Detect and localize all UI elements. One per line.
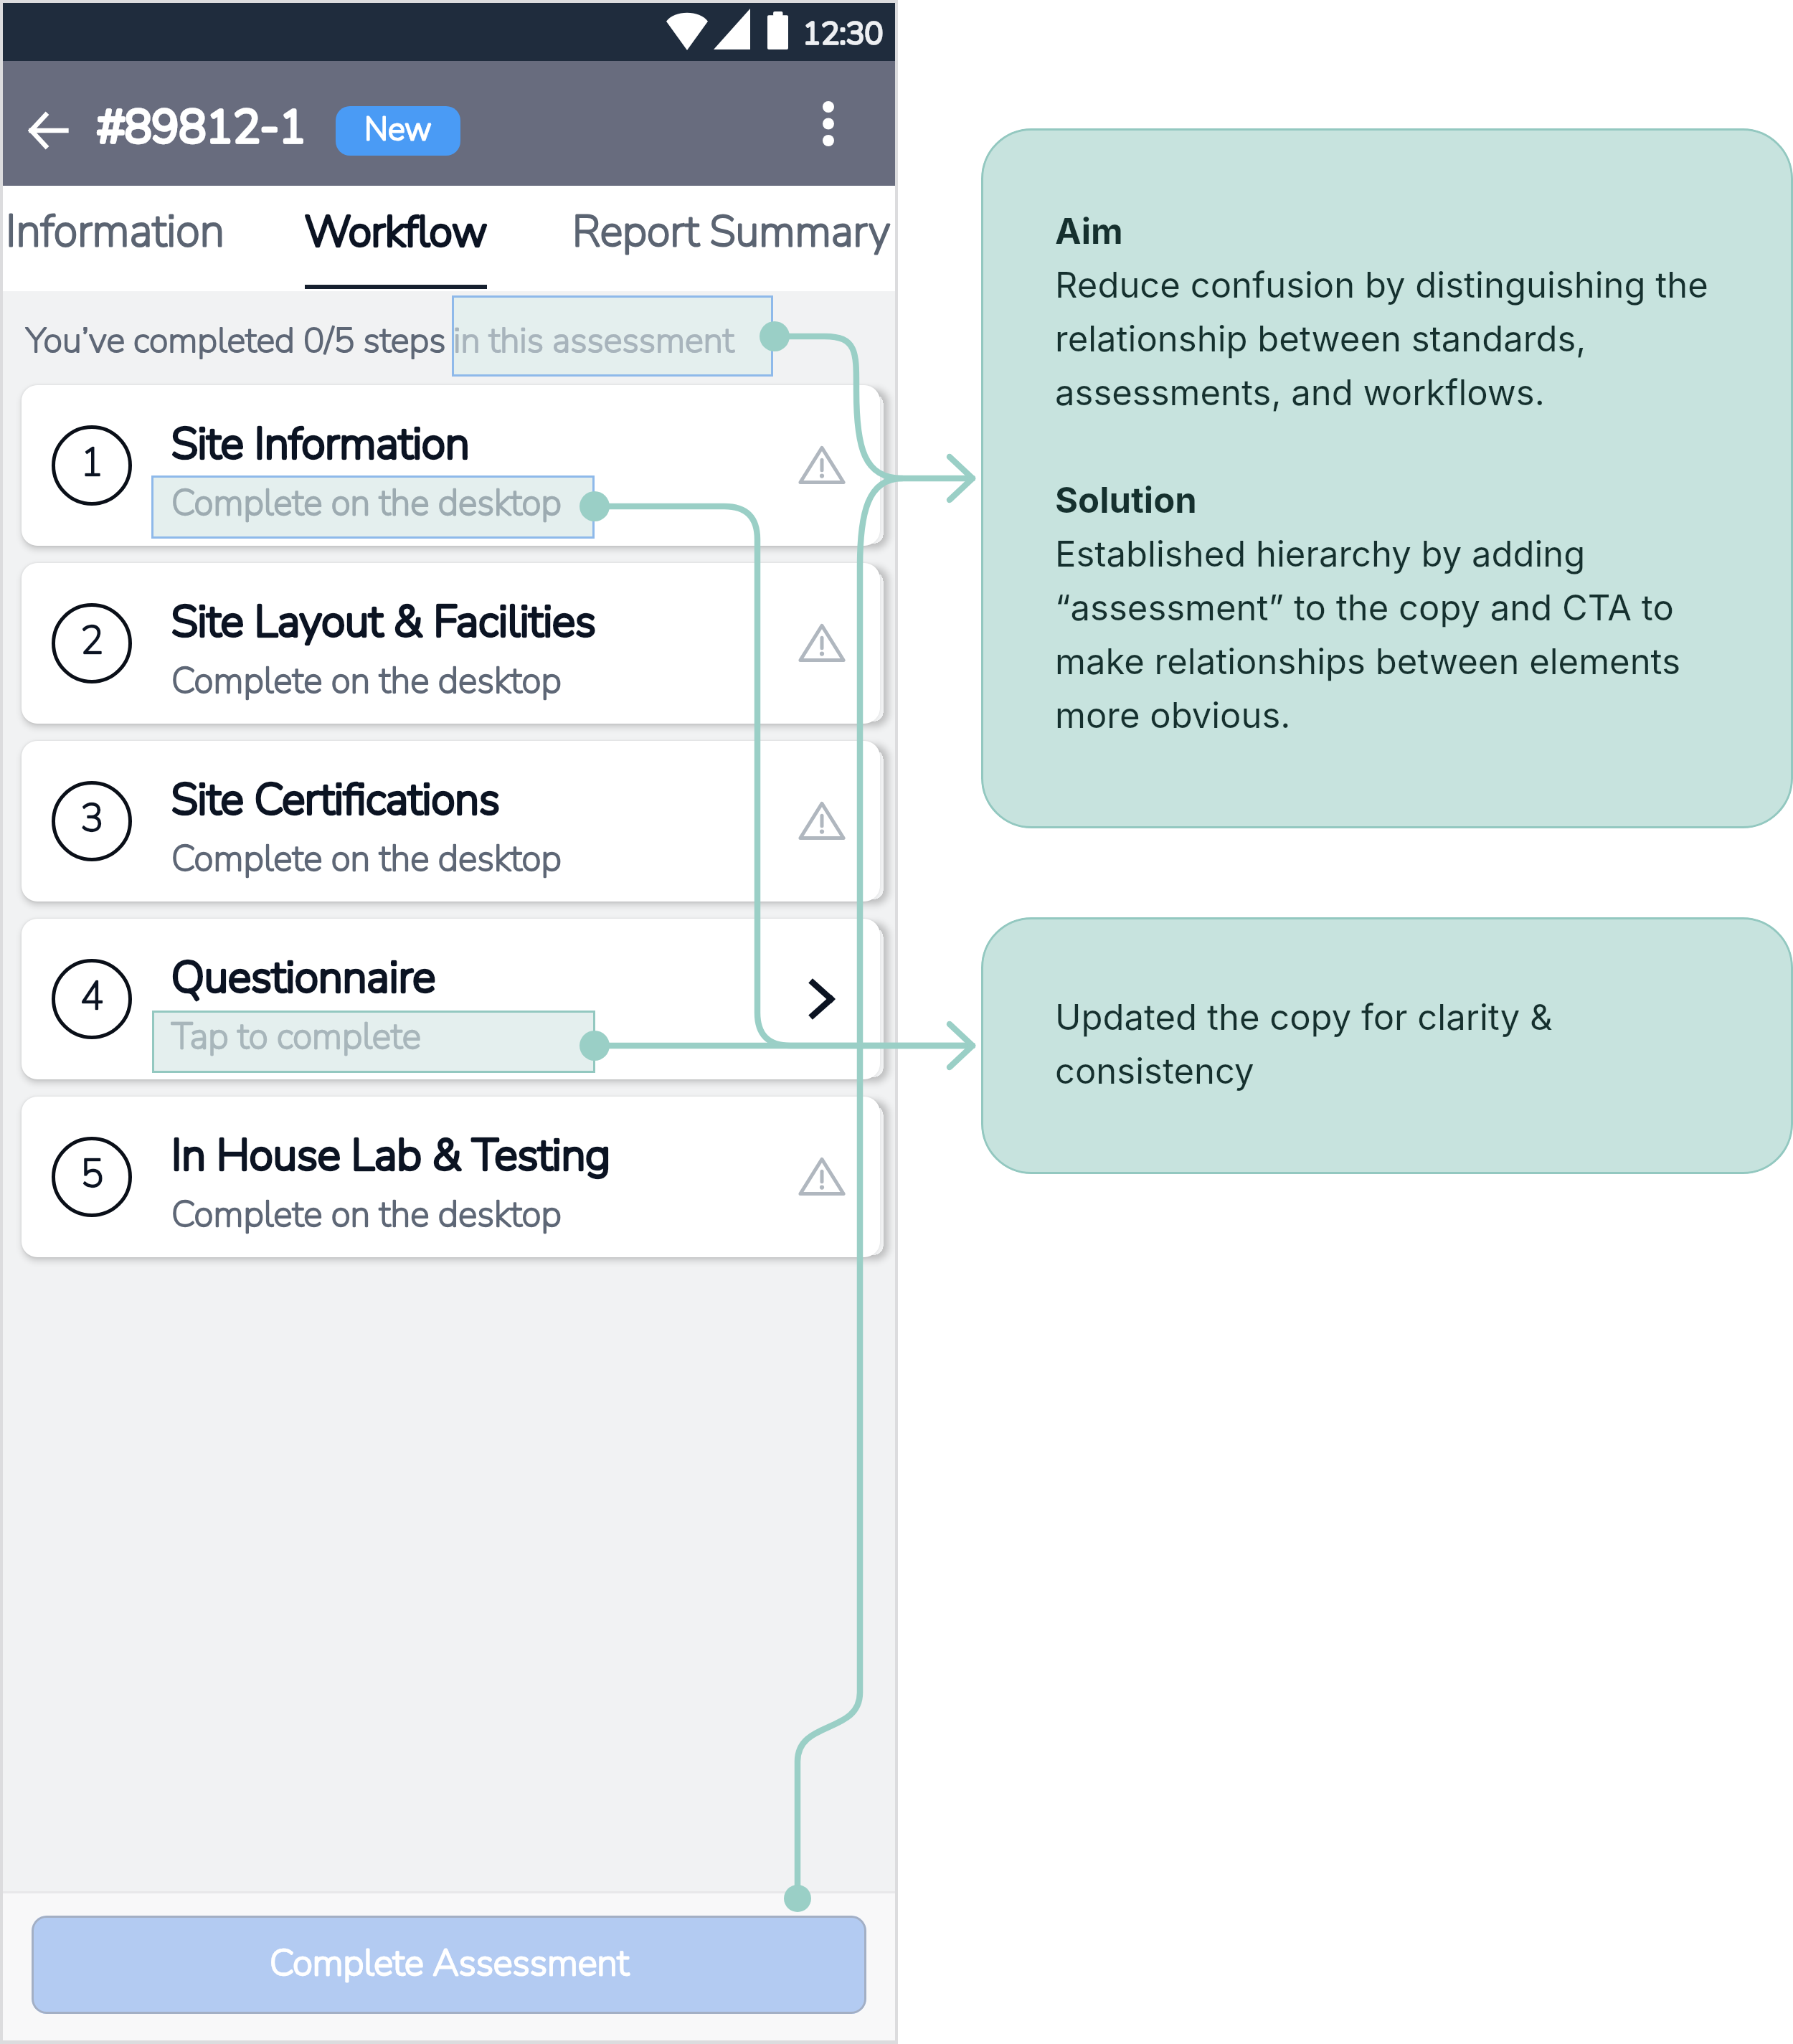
staticText: Complete on the desktop: [171, 478, 562, 527]
button[interactable]: Back: [22, 104, 75, 157]
button[interactable]: 2: [22, 563, 880, 724]
staticText: 5: [80, 1148, 104, 1201]
staticText: Information: [6, 201, 224, 262]
staticText: Report Summary: [572, 202, 891, 261]
staticText: Questionnaire: [171, 947, 436, 1007]
staticText: Complete on the desktop: [171, 834, 562, 883]
staticText: Information: [6, 201, 224, 262]
staticText: Complete on the desktop: [171, 1190, 562, 1239]
staticText: 1: [80, 436, 104, 489]
staticText: New: [364, 108, 432, 151]
staticText: in this assessment: [453, 316, 734, 364]
staticText: Workflow: [305, 203, 488, 260]
staticText: 4: [80, 970, 104, 1023]
staticText: Reduce confusion by distinguishing the r…: [1055, 264, 1708, 414]
staticText: You’ve completed 0/5 steps: [26, 316, 446, 364]
staticText: Complete Assessment: [270, 1938, 629, 1988]
staticText: Complete on the desktop: [171, 656, 562, 705]
button[interactable]: New: [336, 106, 460, 156]
staticText: 2: [80, 614, 104, 667]
staticText: Site Layout & Facilities: [171, 592, 596, 651]
staticText: 12:30: [803, 13, 884, 55]
button[interactable]: Information: [0, 186, 236, 291]
staticText: In House Lab & Testing: [171, 1125, 611, 1185]
staticText: Site Information: [171, 414, 470, 473]
staticText: Complete on the desktop: [171, 478, 562, 527]
button[interactable]: Workflow: [290, 186, 501, 291]
button[interactable]: 5: [22, 1097, 880, 1257]
button[interactable]: More options: [800, 95, 857, 152]
staticText: You’ve completed 0/5 steps: [26, 316, 446, 364]
button[interactable]: 1: [22, 385, 880, 546]
staticText: 12:30: [803, 13, 884, 55]
staticText: Solution: [1055, 479, 1197, 521]
staticText: #89812-1: [98, 96, 306, 158]
staticText: Site Layout & Facilities: [171, 592, 596, 651]
staticText: Established hierarchy by adding “assessm…: [1055, 533, 1680, 737]
staticText: Site Certifications: [171, 770, 501, 829]
button[interactable]: 3: [22, 741, 880, 902]
staticText: New: [364, 108, 432, 151]
staticText: Site Certifications: [171, 770, 501, 829]
staticText: Workflow: [305, 203, 488, 260]
staticText: 3: [80, 792, 104, 845]
button[interactable]: Report Summary: [560, 186, 902, 291]
staticText: Aim: [1055, 210, 1123, 252]
staticText: Complete on the desktop: [171, 834, 562, 883]
staticText: 2: [80, 614, 104, 667]
staticText: Updated the copy for clarity & consisten…: [1055, 996, 1553, 1092]
staticText: In House Lab & Testing: [171, 1125, 611, 1185]
staticText: Complete on the desktop: [171, 656, 562, 705]
staticText: Report Summary: [572, 202, 891, 261]
staticText: 1: [80, 436, 104, 489]
staticText: 4: [80, 970, 104, 1023]
button[interactable]: Complete Assessment: [32, 1916, 866, 2014]
staticText: Site Information: [171, 414, 470, 473]
staticText: 3: [80, 792, 104, 845]
staticText: #89812-1: [98, 96, 306, 158]
button[interactable]: 4: [22, 919, 880, 1079]
staticText: Questionnaire: [171, 947, 436, 1007]
staticText: Tap to complete: [171, 1012, 421, 1061]
staticText: 5: [80, 1148, 104, 1201]
staticText: in this assessment: [453, 316, 734, 364]
staticText: Tap to complete: [171, 1012, 421, 1061]
staticText: Complete Assessment: [270, 1938, 629, 1988]
staticText: Complete on the desktop: [171, 1190, 562, 1239]
